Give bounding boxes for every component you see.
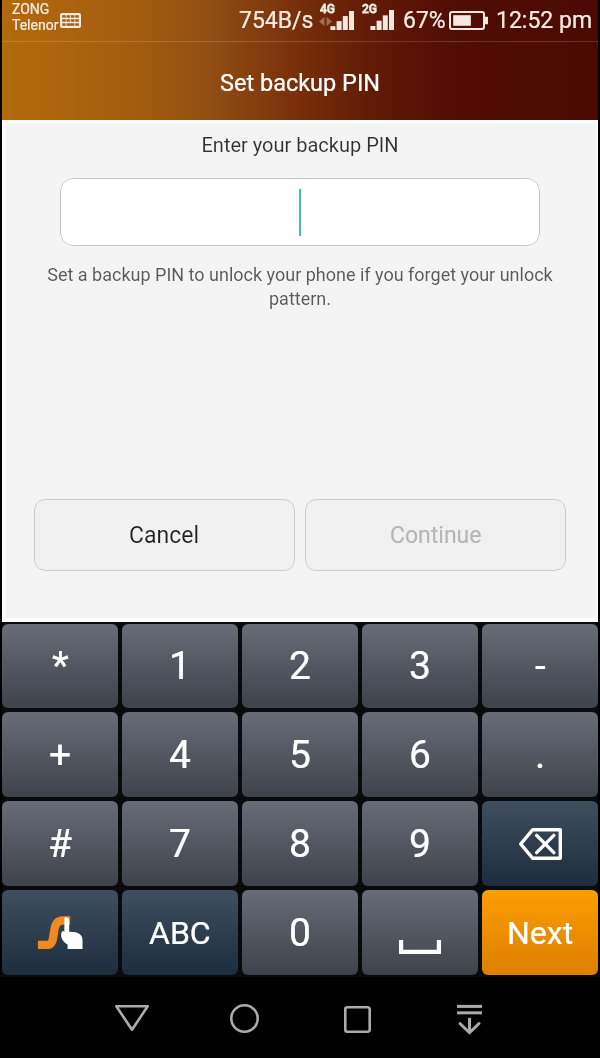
button[interactable]: 7 <box>122 801 238 886</box>
button[interactable]: 4 <box>122 712 238 797</box>
button[interactable]: 3 <box>362 624 478 708</box>
button[interactable]: - <box>482 624 598 708</box>
staticText: ABC <box>149 914 211 952</box>
staticText: Enter your backup PIN <box>0 133 600 156</box>
staticText: ZONG <box>12 1 50 17</box>
button[interactable]: Back <box>100 988 164 1048</box>
staticText: 0 <box>289 910 311 956</box>
button[interactable]: 6 <box>362 712 478 797</box>
button[interactable]: . <box>482 712 598 797</box>
staticText: Telenor <box>12 17 59 33</box>
staticText: + <box>49 732 72 778</box>
button[interactable]: ABC <box>122 890 238 975</box>
staticText: Set a backup PIN to unlock your phone if… <box>44 264 556 309</box>
button[interactable]: + <box>2 712 118 797</box>
staticText: 9 <box>409 821 431 867</box>
staticText: 2G <box>362 2 377 16</box>
button[interactable]: 0 <box>242 890 358 975</box>
staticText: Set backup PIN <box>220 69 381 97</box>
staticText: 2 <box>289 643 311 689</box>
button[interactable]: 9 <box>362 801 478 886</box>
button[interactable]: 8 <box>242 801 358 886</box>
button[interactable]: Recents <box>325 989 389 1049</box>
staticText: 8 <box>289 821 311 867</box>
button[interactable]: Continue <box>305 499 566 571</box>
button[interactable]: Next <box>482 890 598 975</box>
staticText: 67% <box>403 7 446 34</box>
staticText: Continue <box>390 522 482 549</box>
button[interactable]: Cancel <box>34 499 295 571</box>
button[interactable] <box>60 178 540 246</box>
staticText: # <box>48 821 73 867</box>
button[interactable]: Home <box>212 988 276 1048</box>
button[interactable]: 1 <box>122 624 238 708</box>
button[interactable]: Swype <box>2 890 118 975</box>
staticText: 754B/s <box>239 7 314 34</box>
button[interactable]: 5 <box>242 712 358 797</box>
button[interactable]: Space <box>362 890 478 975</box>
button[interactable]: # <box>2 801 118 886</box>
button[interactable]: Hide keyboard <box>437 989 501 1049</box>
staticText: . <box>535 732 546 778</box>
staticText: 1 <box>169 643 191 689</box>
staticText: 4G <box>320 2 335 16</box>
button[interactable]: * <box>2 624 118 708</box>
staticText: * <box>52 643 69 689</box>
staticText: 6 <box>409 732 431 778</box>
staticText: Cancel <box>129 522 200 549</box>
staticText: - <box>535 643 546 689</box>
staticText: 12:52 pm <box>496 7 593 34</box>
staticText: 7 <box>169 821 191 867</box>
button[interactable]: 2 <box>242 624 358 708</box>
staticText: 5 <box>289 732 311 778</box>
staticText: Next <box>507 914 574 952</box>
button[interactable]: Backspace <box>482 801 598 886</box>
staticText: 4 <box>169 732 191 778</box>
staticText: 3 <box>409 643 431 689</box>
